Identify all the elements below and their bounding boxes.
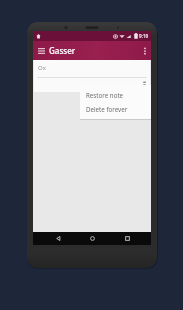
button[interactable]: Ox [34, 60, 150, 92]
staticText: Gasser [49, 45, 76, 56]
staticText: Ox [38, 64, 46, 72]
button[interactable]: Recent apps [117, 232, 137, 245]
staticText: Delete forever [86, 105, 128, 113]
button[interactable]: Restore note [80, 88, 151, 102]
button[interactable]: More options [138, 44, 151, 57]
button[interactable]: Note options [140, 79, 149, 91]
staticText: Restore note [86, 91, 124, 99]
button[interactable]: Back [48, 232, 68, 245]
button[interactable]: Delete forever [80, 102, 151, 116]
staticText: 9:19 [139, 33, 149, 39]
button[interactable]: Open navigation drawer [35, 44, 48, 57]
button[interactable]: Home [82, 232, 102, 245]
